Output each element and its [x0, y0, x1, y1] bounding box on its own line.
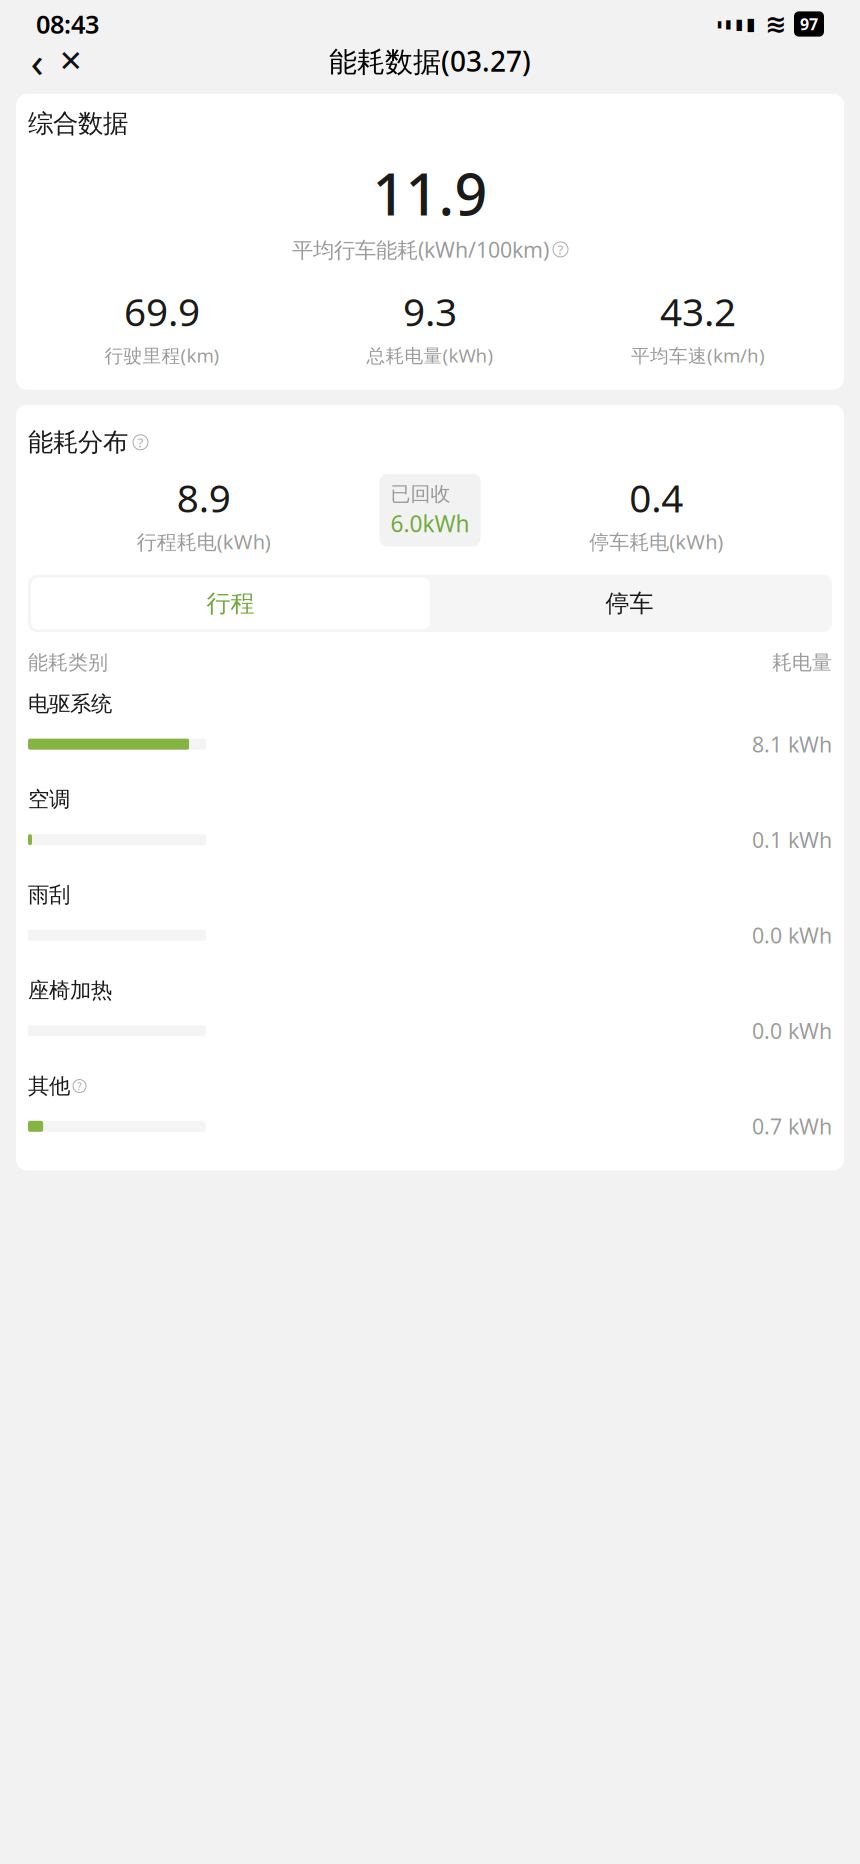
button[interactable]: 停车 — [430, 578, 829, 629]
staticText: 能耗分布 — [28, 427, 128, 458]
staticText: 已回收 — [390, 482, 450, 506]
staticText: 雨刮 — [28, 882, 70, 908]
staticText: 97 — [800, 13, 818, 35]
staticText: 耗电量 — [772, 650, 832, 675]
staticText: 其他 — [28, 1073, 70, 1099]
staticText: 行驶里程(km) — [104, 343, 219, 368]
staticText: ? — [137, 433, 143, 451]
staticText: 停车 — [605, 589, 653, 618]
staticText: ▮ — [717, 19, 722, 29]
staticText: ▮ — [725, 17, 732, 31]
staticText: ? — [557, 241, 563, 258]
staticText: 9.3 — [403, 286, 457, 337]
staticText: ▮ — [746, 14, 756, 34]
button[interactable]: 行程 — [31, 578, 430, 629]
staticText: 8.1 kWh — [752, 730, 832, 758]
button[interactable]: 关闭 — [54, 41, 88, 81]
staticText: 0.7 kWh — [752, 1112, 832, 1140]
staticText: 平均车速(km/h) — [631, 343, 765, 368]
staticText: ▮ — [735, 16, 743, 32]
staticText: ‹ — [30, 33, 43, 89]
staticText: 43.2 — [660, 286, 736, 337]
staticText: 08:43 — [36, 7, 99, 41]
staticText: 行程 — [206, 589, 254, 618]
staticText: 6.0kWh — [390, 508, 469, 538]
staticText: 座椅加热 — [28, 977, 112, 1004]
staticText: 行程耗电(kWh) — [137, 528, 271, 555]
staticText: 停车耗电(kWh) — [589, 528, 723, 555]
staticText: 平均行车能耗(kWh/100km) — [292, 235, 549, 264]
staticText: 能耗数据(03.27) — [329, 42, 531, 80]
staticText: 8.9 — [177, 472, 231, 523]
staticText: 电驱系统 — [28, 691, 112, 717]
staticText: 综合数据 — [28, 108, 128, 139]
button[interactable]: 返回 — [20, 41, 54, 81]
staticText: 0.0 kWh — [752, 921, 832, 949]
staticText: 能耗类别 — [28, 650, 108, 675]
staticText: 空调 — [28, 786, 70, 812]
staticText: 0.0 kWh — [752, 1017, 832, 1045]
staticText: 11.9 — [372, 155, 487, 231]
staticText: ? — [77, 1079, 82, 1093]
staticText: ≋ — [765, 10, 786, 38]
staticText: 0.4 — [629, 472, 683, 523]
staticText: ✕ — [58, 44, 83, 78]
staticText: 0.1 kWh — [752, 825, 832, 854]
staticText: 总耗电量(kWh) — [366, 343, 493, 368]
staticText: 69.9 — [124, 286, 200, 337]
